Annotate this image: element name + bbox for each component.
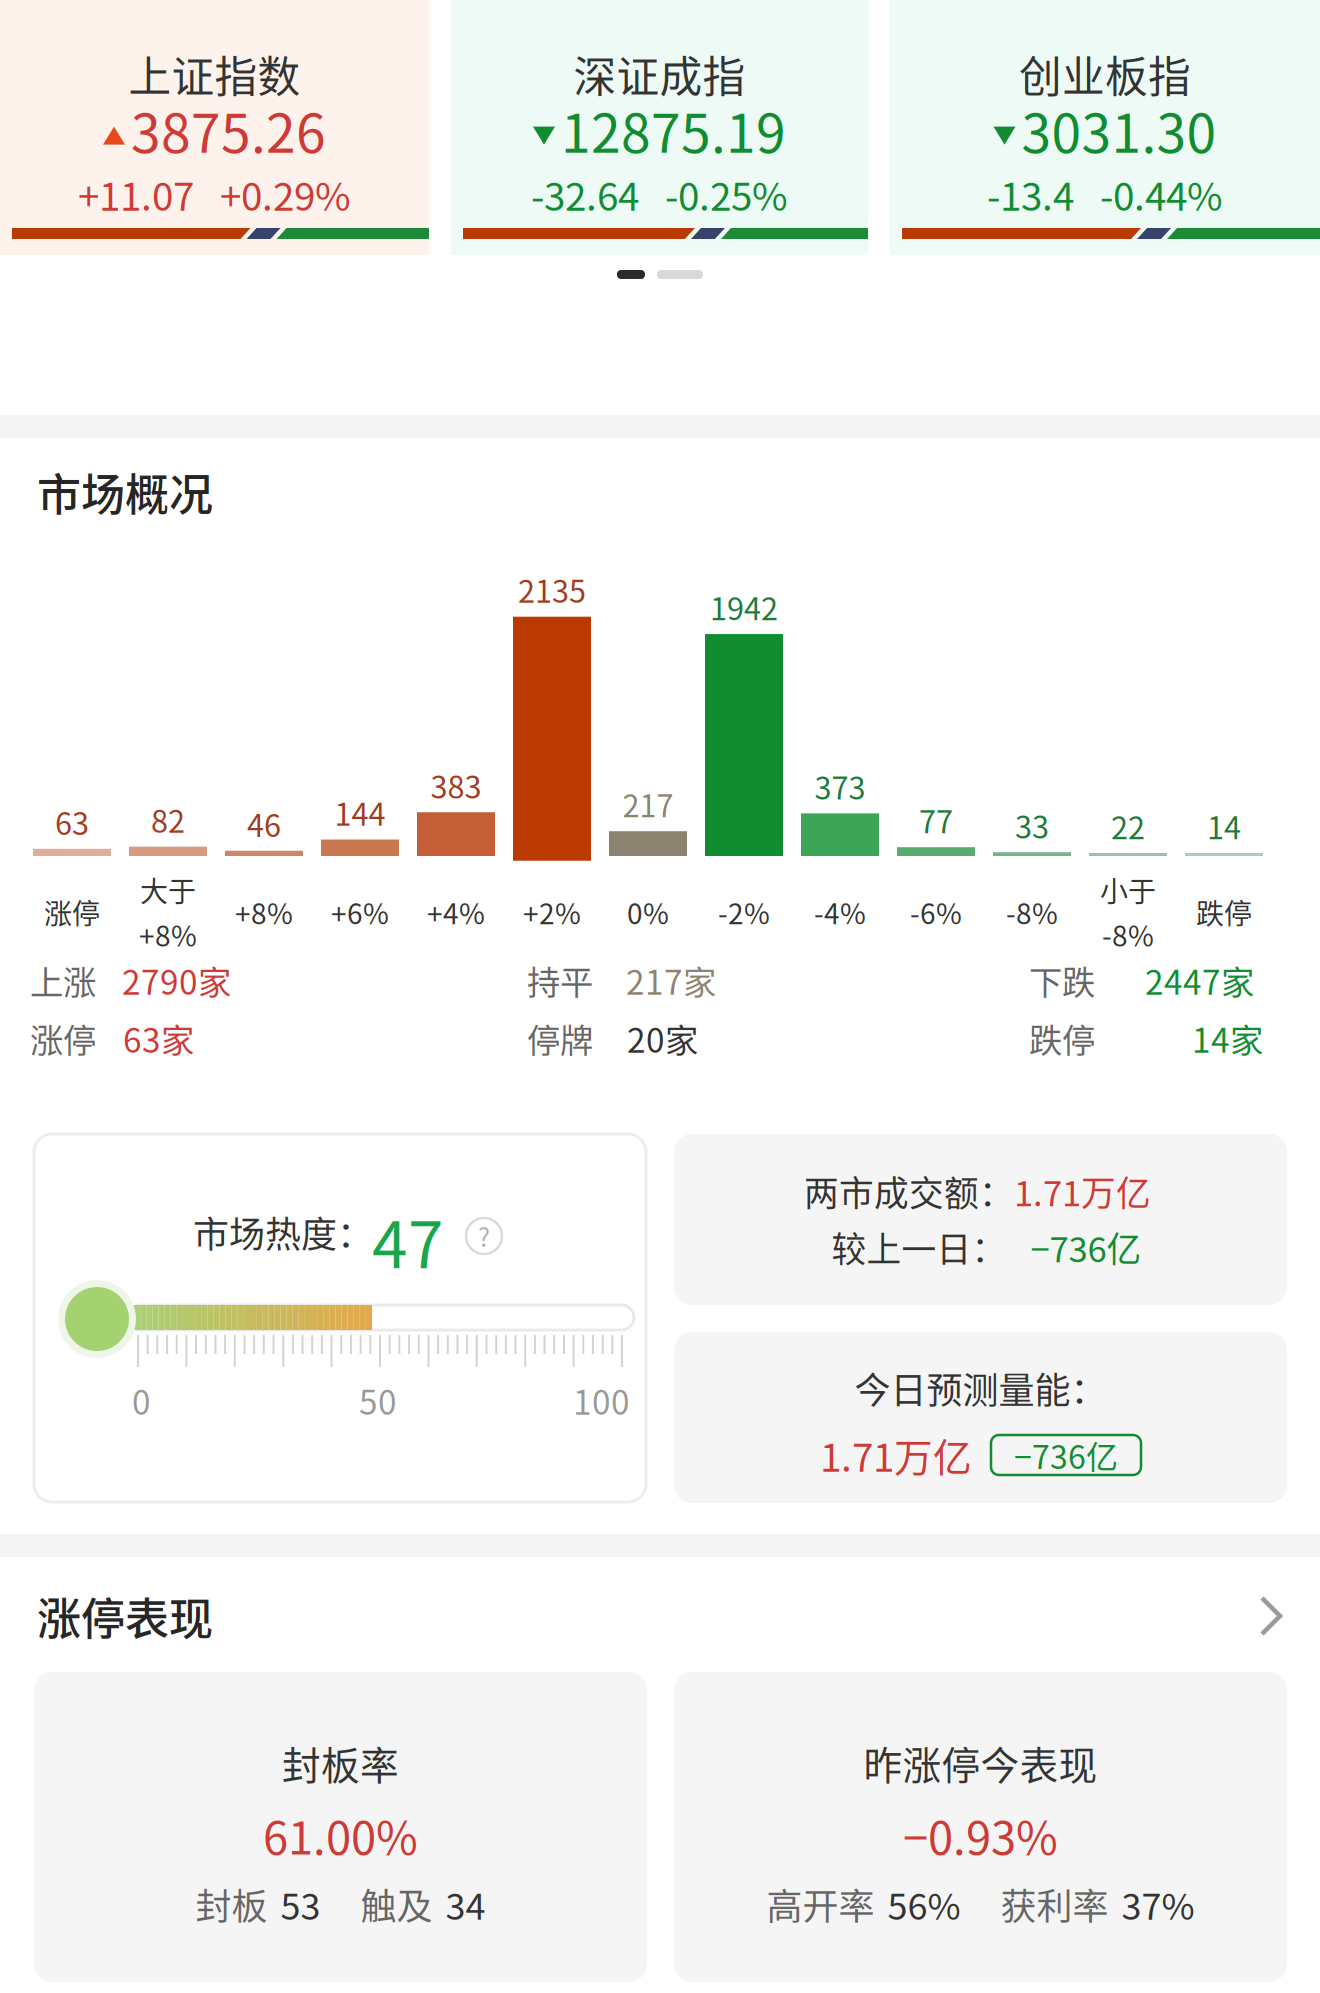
staticText: 昨涨停今表现	[863, 1735, 1097, 1791]
staticText: 1.71万亿	[820, 1427, 972, 1483]
staticText: 创业板指	[1019, 43, 1191, 105]
staticText: 50	[359, 1376, 397, 1424]
staticText: 跌停	[1029, 1014, 1095, 1062]
staticText: +8%	[235, 892, 293, 932]
staticText: -32.64	[531, 166, 639, 222]
staticText: 封板	[195, 1878, 267, 1930]
button[interactable]: 上证指数	[0, 0, 429, 255]
button[interactable]: 深证成指	[451, 0, 868, 255]
staticText: 今日预测量能：	[854, 1362, 1106, 1414]
staticText: 33	[1015, 803, 1049, 847]
staticText: −736亿	[1006, 1222, 1141, 1272]
staticText: 3031.30	[1021, 91, 1216, 168]
button[interactable]: 两市成交额：	[674, 1134, 1287, 1305]
staticText: ?	[478, 1218, 490, 1254]
staticText: +11.07	[78, 166, 194, 222]
staticText: 触及	[360, 1878, 432, 1930]
staticText: 1.71万亿	[1014, 1166, 1151, 1216]
staticText: 深证成指	[573, 43, 745, 105]
staticText: 217	[622, 782, 673, 826]
staticText: -8%	[1006, 892, 1058, 932]
staticText: 77	[919, 798, 953, 842]
staticText: 37%	[1121, 1878, 1194, 1930]
staticText: 2135	[518, 567, 586, 612]
staticText: 3875.26	[131, 91, 326, 168]
staticText: −736亿	[1014, 1432, 1118, 1478]
button[interactable]: 昨涨停今表现	[674, 1672, 1287, 1982]
button[interactable]: 创业板指	[890, 0, 1320, 255]
staticText: 12875.19	[561, 91, 786, 168]
staticText: 2447家	[1145, 956, 1254, 1004]
staticText: 获利率	[1000, 1878, 1108, 1930]
staticText: 市场概况	[37, 460, 213, 524]
staticText: 56%	[887, 1878, 960, 1930]
button[interactable]: 市场热度：	[34, 1134, 646, 1502]
staticText: 两市成交额：	[804, 1166, 1014, 1216]
staticText: -4%	[814, 892, 866, 932]
staticText: 61.00%	[263, 1802, 418, 1868]
staticText: 144	[334, 790, 385, 834]
staticText: 47	[372, 1194, 444, 1287]
staticText: -6%	[910, 892, 962, 932]
staticText: +4%	[427, 892, 485, 932]
staticText: 34	[445, 1878, 485, 1930]
staticText: 383	[430, 763, 481, 807]
staticText: 0%	[627, 892, 669, 932]
staticText: 1942	[710, 585, 778, 629]
staticText: +6%	[331, 892, 389, 932]
staticText: 63家	[123, 1014, 194, 1062]
staticText: 涨停	[30, 1014, 96, 1062]
staticText: 53	[280, 1878, 320, 1930]
button[interactable]: 今日预测量能：	[674, 1332, 1287, 1503]
staticText: 大于	[140, 869, 196, 910]
staticText: 0	[132, 1376, 151, 1424]
staticText: +2%	[523, 892, 581, 932]
staticText: 高开率	[766, 1878, 874, 1930]
staticText: 封板率	[282, 1735, 399, 1791]
staticText: 100	[573, 1376, 630, 1424]
staticText: 82	[151, 797, 185, 842]
staticText: 上涨	[30, 956, 96, 1004]
staticText: 跌停	[1196, 892, 1252, 932]
staticText: 22	[1111, 804, 1145, 848]
staticText: 217家	[626, 956, 716, 1004]
staticText: 63	[55, 799, 89, 844]
staticText: 2790家	[122, 956, 231, 1004]
staticText: 市场热度：	[193, 1206, 373, 1258]
staticText: 小于	[1100, 869, 1156, 910]
staticText: 14家	[1192, 1014, 1263, 1062]
staticText: 涨停	[44, 892, 100, 932]
staticText: 46	[247, 801, 281, 846]
staticText: 14	[1207, 804, 1241, 848]
staticText: -2%	[718, 892, 770, 932]
staticText: 下跌	[1029, 956, 1095, 1004]
staticText: 20家	[627, 1014, 698, 1062]
staticText: 373	[814, 764, 865, 808]
staticText: 涨停表现	[37, 1584, 213, 1648]
button[interactable]: 封板率	[34, 1672, 647, 1982]
button[interactable]: 涨停表现	[37, 1589, 1285, 1643]
staticText: 持平	[527, 956, 593, 1004]
staticText: 停牌	[527, 1014, 593, 1062]
staticText: -8%	[1102, 914, 1154, 954]
staticText: +0.29%	[220, 166, 351, 222]
staticText: 较上一日：	[831, 1222, 1006, 1272]
staticText: 上证指数	[128, 43, 300, 105]
staticText: -0.44%	[1100, 166, 1223, 222]
staticText: -0.25%	[665, 166, 788, 222]
staticText: +8%	[139, 914, 197, 954]
staticText: −0.93%	[903, 1802, 1058, 1868]
staticText: -13.4	[987, 166, 1074, 222]
